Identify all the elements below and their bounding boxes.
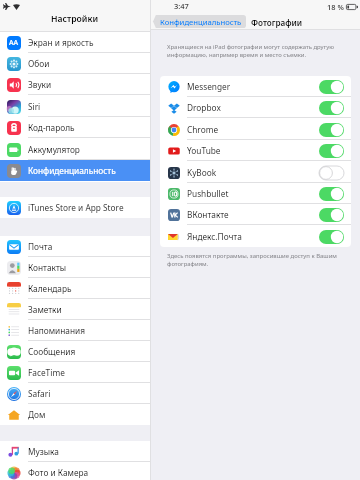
button[interactable]: Safari (0, 383, 150, 404)
staticText: iTunes Store и App Store (28, 202, 124, 213)
button[interactable]: Chrome permission toggle (319, 123, 344, 137)
staticText: Контакты (28, 262, 67, 273)
button[interactable]: Chrome (160, 119, 351, 140)
button[interactable]: Фото и Камера (0, 462, 150, 480)
staticText: Музыка (28, 446, 59, 457)
staticText: Конфиденциальность (28, 165, 116, 176)
button[interactable]: Напоминания (0, 320, 150, 341)
staticText: Почта (28, 241, 53, 252)
button[interactable]: Dropbox (160, 97, 351, 118)
staticText: Chrome (187, 124, 219, 135)
staticText: Напоминания (28, 325, 86, 336)
button[interactable]: Siri (0, 96, 150, 117)
staticText: Dropbox (187, 102, 221, 113)
staticText: Аккумулятор (28, 144, 80, 155)
button[interactable]: KyBook (160, 162, 351, 183)
staticText: KyBook (187, 167, 217, 178)
staticText: Яндекс.Почта (187, 231, 242, 242)
button[interactable]: ВКонтакте permission toggle (319, 208, 344, 222)
staticText: Pushbullet (187, 188, 229, 199)
staticText: Safari (28, 388, 51, 399)
staticText: Siri (28, 101, 41, 112)
button[interactable]: Код-пароль (0, 117, 150, 138)
staticText: Заметки (28, 304, 62, 315)
button[interactable]: Сообщения (0, 341, 150, 362)
button[interactable]: YouTube (160, 140, 351, 161)
button[interactable]: iTunes Store и App Store (0, 197, 150, 218)
button[interactable]: Pushbullet (160, 183, 351, 204)
staticText: Хранящиеся на iPad фотографии могут соде… (167, 43, 339, 59)
staticText: Фото и Камера (28, 467, 89, 478)
staticText: Дом (28, 409, 46, 420)
staticText: 18 % (327, 2, 344, 12)
staticText: Код-пароль (28, 122, 75, 133)
button[interactable]: Звуки (0, 74, 150, 95)
staticText: FaceTime (28, 367, 65, 378)
button[interactable]: Контакты (0, 257, 150, 278)
button[interactable]: Яндекс.Почта (160, 226, 351, 247)
button[interactable]: Почта (0, 236, 150, 257)
button[interactable]: Messenger (160, 76, 351, 97)
button[interactable]: Календарь (0, 278, 150, 299)
button[interactable]: Обои (0, 53, 150, 74)
staticText: Календарь (28, 283, 72, 294)
staticText: Messenger (187, 81, 231, 92)
button[interactable]: ВКонтакте (160, 204, 351, 225)
staticText: Экран и яркость (28, 37, 94, 48)
button[interactable]: Конфиденциальность (0, 160, 150, 181)
button[interactable]: Дом (0, 404, 150, 425)
staticText: AA (9, 38, 19, 48)
button[interactable]: Messenger permission toggle (319, 80, 344, 94)
button[interactable]: Dropbox permission toggle (319, 101, 344, 115)
button[interactable]: AA (0, 32, 150, 53)
button[interactable]: FaceTime (0, 362, 150, 383)
button[interactable]: Конфиденциальность (153, 15, 246, 28)
staticText: Настройки (51, 13, 99, 25)
staticText: 3:47 (174, 1, 189, 11)
staticText: Конфиденциальность (160, 17, 242, 27)
button[interactable]: YouTube permission toggle (319, 144, 344, 158)
button[interactable]: Яндекс.Почта permission toggle (319, 230, 344, 244)
staticText: YouTube (187, 145, 221, 156)
staticText: Фотографии (251, 17, 303, 28)
staticText: Звуки (28, 79, 52, 90)
staticText: ВКонтакте (187, 209, 229, 220)
button[interactable]: Музыка (0, 441, 150, 462)
button[interactable]: KyBook permission toggle (319, 166, 344, 180)
staticText: Здесь появятся программы, запросившие до… (167, 252, 339, 268)
staticText: Сообщения (28, 346, 76, 357)
staticText: Обои (28, 58, 50, 69)
button[interactable]: Pushbullet permission toggle (319, 187, 344, 201)
button[interactable]: Заметки (0, 299, 150, 320)
button[interactable]: Аккумулятор (0, 139, 150, 160)
